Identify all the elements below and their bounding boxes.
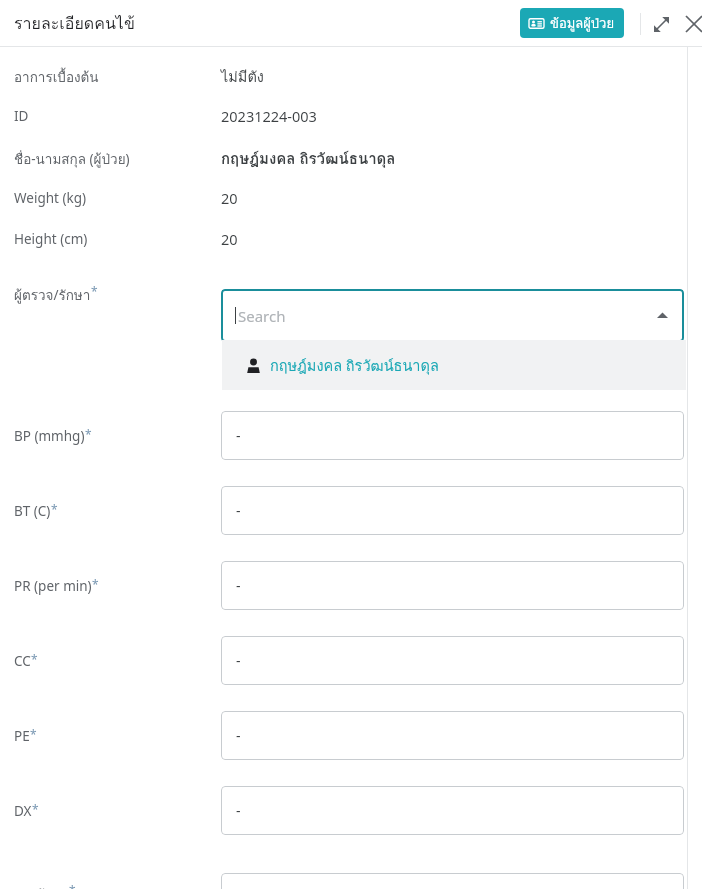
- staticText: -: [236, 501, 241, 520]
- button[interactable]: -: [221, 711, 684, 760]
- staticText: *: [32, 801, 39, 817]
- staticText: -: [236, 576, 241, 595]
- staticText: ข้อมูลผู้ป่วย: [550, 13, 615, 34]
- button[interactable]: ข้อมูลผู้ป่วย: [520, 8, 624, 38]
- staticText: PR (per min): [14, 577, 92, 595]
- staticText: *: [92, 576, 99, 592]
- staticText: -: [236, 801, 241, 820]
- button[interactable]: [221, 873, 684, 889]
- button[interactable]: -: [221, 561, 684, 610]
- button[interactable]: -: [221, 786, 684, 835]
- staticText: BT (C): [14, 502, 51, 520]
- staticText: -: [236, 426, 241, 445]
- staticText: *: [91, 283, 98, 299]
- staticText: ชื่อ-นามสกุล (ผู้ป่วย): [14, 148, 130, 169]
- staticText: -: [236, 651, 241, 670]
- staticText: *: [51, 501, 58, 517]
- staticText: *: [30, 726, 37, 742]
- button[interactable]: -: [221, 411, 684, 460]
- staticText: กฤษฎ์มงคล ถิรวัฒน์ธนาดุล: [221, 147, 396, 171]
- staticText: การรักษา: [14, 883, 69, 889]
- staticText: PE: [14, 727, 30, 745]
- button[interactable]: Expand: [648, 11, 674, 37]
- staticText: ID: [14, 107, 29, 125]
- button[interactable]: -: [221, 486, 684, 535]
- staticText: 20: [221, 188, 238, 208]
- button[interactable]: กฤษฎ์มงคล ถิรวัฒน์ธนาดุล: [222, 340, 686, 390]
- staticText: BP (mmhg): [14, 427, 85, 445]
- staticText: รายละเอียดคนไข้: [14, 11, 135, 36]
- button[interactable]: Search: [221, 289, 684, 342]
- staticText: *: [31, 651, 38, 667]
- staticText: 20: [221, 229, 238, 249]
- button[interactable]: Close: [681, 11, 702, 37]
- staticText: Height (cm): [14, 230, 88, 248]
- staticText: ไม่มีตัง: [221, 65, 264, 88]
- staticText: Search: [238, 306, 286, 326]
- staticText: *: [85, 426, 92, 442]
- staticText: DX: [14, 802, 32, 820]
- staticText: กฤษฎ์มงคล ถิรวัฒน์ธนาดุล: [270, 354, 439, 377]
- staticText: ผู้ตรวจ/รักษา: [14, 284, 91, 305]
- staticText: -: [236, 726, 241, 745]
- staticText: อาการเบื้องต้น: [14, 66, 99, 87]
- staticText: CC: [14, 652, 31, 670]
- staticText: Weight (kg): [14, 189, 87, 207]
- button[interactable]: -: [221, 636, 684, 685]
- staticText: 20231224-003: [221, 106, 317, 126]
- staticText: *: [69, 882, 76, 889]
